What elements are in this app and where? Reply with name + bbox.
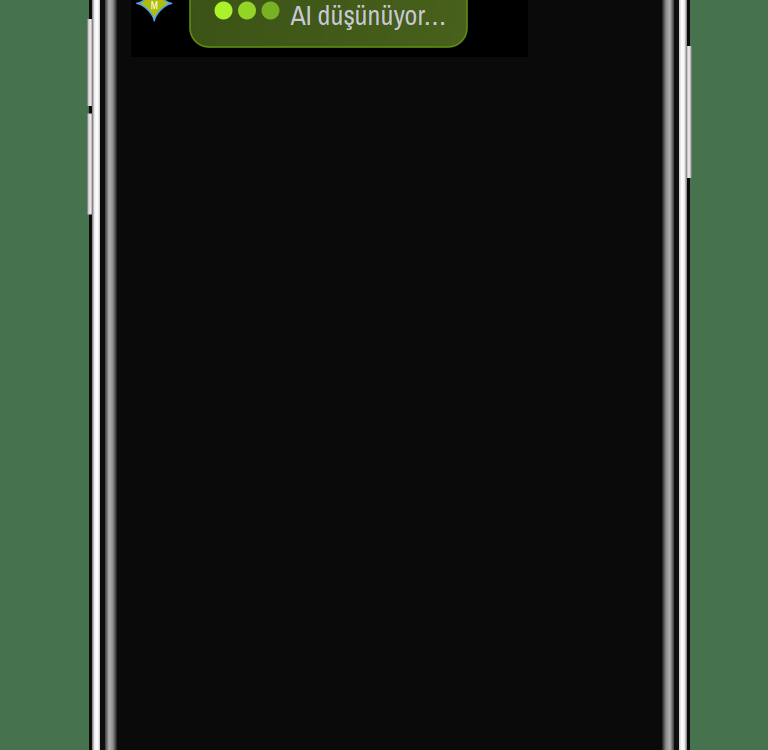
button[interactable]: Assistant avatar xyxy=(136,0,172,21)
button[interactable]: Volume up xyxy=(87,19,93,106)
staticText: M xyxy=(151,0,158,13)
button[interactable]: Side button xyxy=(686,46,692,178)
button[interactable]: Volume down xyxy=(87,113,93,214)
staticText: AI düşünüyor… xyxy=(290,0,446,34)
